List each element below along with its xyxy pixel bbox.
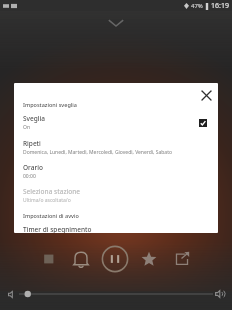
button[interactable]: Favourite	[136, 246, 162, 272]
button[interactable]: Ripeti	[23, 139, 211, 156]
staticText: Ripeti	[23, 139, 41, 148]
staticText: Orario	[23, 163, 43, 172]
button[interactable]: Alarm	[68, 246, 94, 272]
button[interactable]: Share	[170, 247, 194, 271]
staticText: Ultima/o ascoltata/o	[23, 197, 71, 204]
staticText: Impostazioni di avvio	[23, 212, 79, 219]
button[interactable]: Collapse	[100, 14, 132, 32]
staticText: Sveglia	[23, 114, 45, 123]
staticText: 47%	[191, 2, 203, 10]
button[interactable]: Close	[196, 85, 216, 105]
button[interactable]: Volume down	[5, 287, 19, 301]
button[interactable]: Pause	[100, 244, 130, 274]
staticText: On	[23, 124, 30, 131]
button[interactable]: Record	[38, 248, 60, 270]
button[interactable]: Volume	[19, 287, 213, 301]
button[interactable]: Sveglia toggle	[195, 115, 211, 131]
staticText: Seleziona stazione	[23, 187, 81, 196]
staticText: 00:00	[23, 173, 36, 180]
button[interactable]: Timer di spegnimento	[23, 225, 211, 233]
staticText: 16:19	[211, 1, 229, 11]
button[interactable]: Sveglia	[23, 114, 211, 131]
button[interactable]: Volume up	[213, 287, 227, 301]
button[interactable]: Orario	[23, 163, 211, 180]
staticText: Domenica, Lunedì, Martedì, Mercoledì, Gi…	[23, 149, 172, 156]
staticText: Timer di spegnimento	[23, 225, 92, 233]
button[interactable]: Seleziona stazione	[23, 187, 211, 204]
staticText: Impostazioni sveglia	[23, 101, 77, 108]
